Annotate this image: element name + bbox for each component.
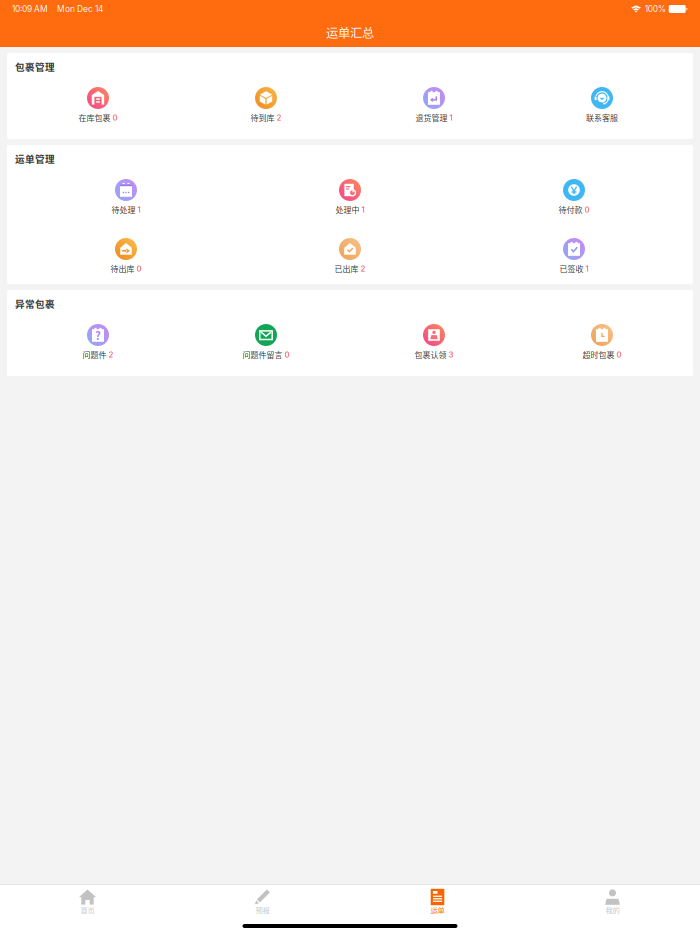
staticText: 1 <box>585 264 588 273</box>
button[interactable]: 待出库 <box>14 238 238 273</box>
button[interactable]: 首页 <box>0 888 175 914</box>
staticText: 0 <box>616 350 621 359</box>
button[interactable]: 我的 <box>525 888 700 914</box>
staticText: 0 <box>284 350 289 359</box>
staticText: 3 <box>448 350 453 359</box>
button[interactable]: 联系客服 <box>518 87 686 122</box>
button[interactable]: 待处理 <box>14 179 238 214</box>
staticText: Mon Dec 14 <box>57 4 103 14</box>
staticText: 我的 <box>605 905 619 915</box>
button[interactable]: 在库包裹 <box>14 87 182 122</box>
staticText: 已签收 <box>559 263 583 274</box>
staticText: ? <box>95 327 101 343</box>
button[interactable]: 包裹认领 <box>350 324 518 359</box>
button[interactable]: ? <box>14 324 182 359</box>
staticText: 异常包裹 <box>15 296 55 310</box>
staticText: 0 <box>136 264 141 273</box>
staticText: 1 <box>361 205 364 214</box>
staticText: 运单汇总 <box>326 24 374 41</box>
staticText: 0 <box>584 205 589 214</box>
button[interactable]: 处理中 <box>238 179 462 214</box>
button[interactable]: 超时包裹 <box>518 324 686 359</box>
staticText: 在库包裹 <box>78 112 110 123</box>
staticText: 待出库 <box>110 263 134 274</box>
button[interactable]: 已出库 <box>238 238 462 273</box>
staticText: 联系客服 <box>586 112 618 123</box>
staticText: 1 <box>137 205 140 214</box>
staticText: 2 <box>276 113 281 122</box>
staticText: 首页 <box>80 905 94 915</box>
staticText: 包裹管理 <box>15 59 55 73</box>
staticText: 处理中 <box>335 204 359 215</box>
staticText: 问题件 <box>82 349 106 360</box>
staticText: 运单 <box>430 905 444 915</box>
staticText: 预报 <box>255 905 269 915</box>
staticText: 超时包裹 <box>582 349 614 360</box>
staticText: 退货管理 <box>415 112 447 123</box>
staticText: 2 <box>360 264 365 273</box>
staticText: 2 <box>108 350 113 359</box>
button[interactable]: 问题件留言 <box>182 324 350 359</box>
staticText: 1 <box>449 113 452 122</box>
staticText: 10:09 AM <box>12 4 48 14</box>
staticText: 待到库 <box>250 112 274 123</box>
button[interactable]: 预报 <box>175 888 350 914</box>
staticText: 运单管理 <box>15 151 55 165</box>
button[interactable]: 待付款 <box>462 179 686 214</box>
staticText: 问题件留言 <box>242 349 282 360</box>
staticText: 100% <box>645 4 666 14</box>
button[interactable]: 运单 <box>350 888 525 914</box>
button[interactable]: 待到库 <box>182 87 350 122</box>
button[interactable]: 退货管理 <box>350 87 518 122</box>
staticText: 待处理 <box>111 204 135 215</box>
staticText: 包裹认领 <box>414 349 446 360</box>
staticText: 待付款 <box>558 204 582 215</box>
staticText: 已出库 <box>334 263 358 274</box>
staticText: 0 <box>112 113 117 122</box>
button[interactable]: 已签收 <box>462 238 686 273</box>
